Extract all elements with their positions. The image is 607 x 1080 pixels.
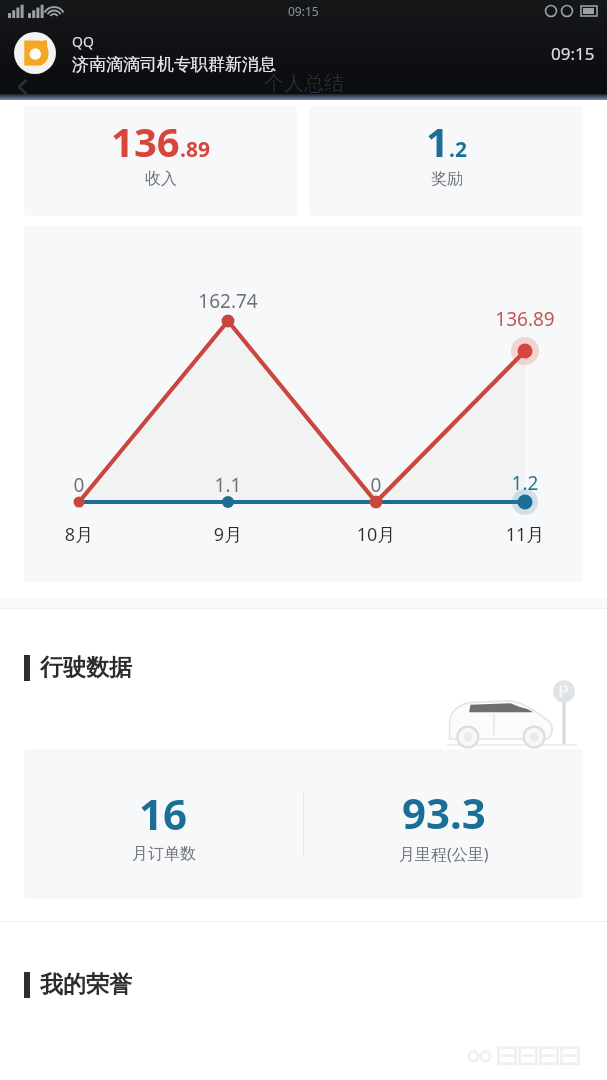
staticText: 09:15 — [288, 3, 319, 19]
staticText: 11月 — [477, 522, 573, 547]
staticText: 个人总结 — [264, 71, 344, 96]
button[interactable]: 93.3 — [304, 784, 583, 865]
staticText: 8月 — [31, 522, 127, 547]
staticText: .89 — [180, 135, 210, 164]
staticText: 0 — [31, 472, 127, 498]
staticText: 09:15 — [551, 42, 595, 65]
staticText: 行驶数据 — [40, 653, 132, 682]
button[interactable]: QQ — [0, 22, 607, 84]
button[interactable]: 1 — [309, 106, 583, 216]
staticText: 93.3 — [402, 784, 486, 841]
staticText: .2 — [449, 135, 467, 164]
staticText: QQ — [72, 32, 94, 51]
staticText: 1.2 — [477, 470, 573, 496]
staticText: 收入 — [145, 169, 177, 189]
button[interactable]: 162.74 — [24, 226, 583, 582]
staticText: 济南滴滴司机专职群新消息 — [72, 54, 276, 75]
staticText: 162.74 — [180, 288, 276, 314]
button[interactable]: 136 — [24, 106, 297, 216]
staticText: 1 — [426, 114, 449, 168]
staticText: 1.1 — [180, 472, 276, 498]
staticText: 16 — [139, 785, 188, 842]
staticText: 136 — [111, 114, 180, 168]
button[interactable]: 16 — [24, 785, 303, 864]
other: Driving data illustration — [447, 677, 577, 749]
staticText: 我的荣誉 — [40, 970, 132, 999]
button[interactable]: 16 — [24, 749, 583, 899]
staticText: 10月 — [328, 522, 424, 547]
staticText: 月里程(公里) — [399, 843, 489, 865]
staticText: 奖励 — [431, 169, 463, 189]
staticText: 9月 — [180, 522, 276, 547]
staticText: 月订单数 — [132, 844, 196, 864]
staticText: 0 — [328, 472, 424, 498]
staticText: 136.89 — [477, 306, 573, 332]
